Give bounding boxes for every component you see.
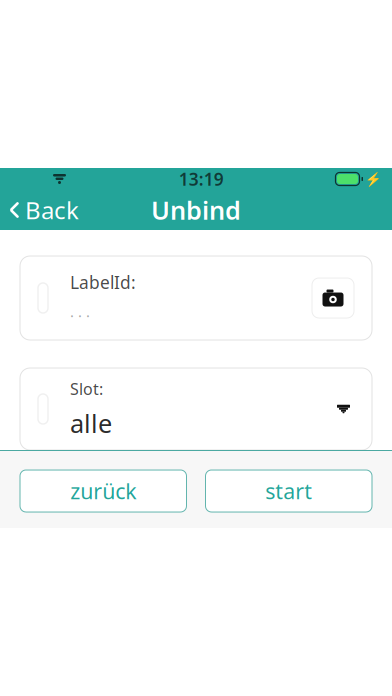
button[interactable]: Choose slot [325, 390, 362, 427]
staticText: Unbind [151, 193, 241, 227]
staticText: Slot: [70, 378, 103, 399]
staticText: start [265, 477, 312, 505]
staticText: 13:19 [179, 167, 224, 190]
button[interactable]: zurück [20, 470, 186, 512]
button[interactable]: Scan label with camera [312, 278, 354, 318]
staticText: LabelId: [70, 271, 136, 294]
staticText: · · · [70, 306, 90, 325]
staticText: ⚡ [365, 171, 382, 187]
staticText: Back [25, 194, 79, 226]
staticText: zurück [70, 477, 136, 505]
button[interactable]: start [205, 470, 372, 512]
staticText: alle [70, 406, 112, 440]
button[interactable]: Back [0, 188, 79, 232]
